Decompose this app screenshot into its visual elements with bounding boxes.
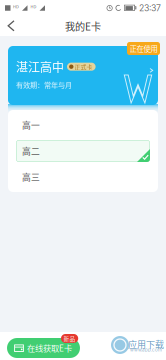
button[interactable]: 在线获取E卡	[7, 338, 80, 358]
button[interactable]: 高三	[8, 166, 158, 188]
staticText: 在线获取E卡	[27, 342, 72, 354]
staticText: ᴴᴰ	[30, 4, 36, 12]
staticText: 新品	[64, 334, 76, 342]
staticText: 应用下载	[128, 337, 164, 351]
staticText: 高一	[22, 119, 40, 131]
staticText: 23:37	[139, 3, 161, 13]
button[interactable]: 高二	[8, 140, 158, 162]
button[interactable]: 高一	[8, 114, 158, 136]
staticText: 湛江高中	[16, 58, 64, 75]
staticText: 正式卡	[75, 62, 93, 71]
staticText: ᴴᴰ	[13, 4, 19, 12]
staticText: 我的E卡	[65, 19, 101, 33]
staticText: 正在使用	[129, 43, 157, 54]
button[interactable]: 返回	[0, 16, 22, 36]
staticText: 高二	[22, 145, 40, 157]
staticText: 有效期：常年与月	[16, 79, 72, 90]
staticText: 高三	[22, 171, 40, 183]
staticText: www.app.com	[130, 347, 162, 352]
